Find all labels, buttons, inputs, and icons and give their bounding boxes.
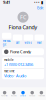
staticText: +1 (555) 012-3456 [4,62,33,67]
staticText: video [24,41,32,44]
staticText: Video · Audio [4,73,26,78]
button[interactable]: Keypad [28,91,37,97]
button[interactable]: Favorites [0,91,9,97]
staticText: ••• ▮ [34,0,43,5]
button[interactable]: FaceTime [2,68,44,79]
staticText: Contacts [20,95,26,97]
staticText: Favorites [1,95,8,97]
staticText: FC [20,14,26,21]
button[interactable]: message [2,33,11,46]
staticText: Fiona Candy [10,49,31,54]
button[interactable]: Contacts [18,91,28,97]
button[interactable]: video [24,35,33,44]
button[interactable]: mail [35,35,44,44]
button[interactable]: call [13,35,22,44]
staticText: FaceTime [4,69,15,73]
button[interactable]: Voicemail [37,91,46,97]
staticText: Edit [37,5,43,10]
staticText: mail [37,41,42,44]
staticText: message [3,39,11,46]
button[interactable]: Edit [37,5,43,10]
staticText: Recents [11,95,17,97]
staticText: call [16,41,20,44]
staticText: Fiona Candy [8,24,37,31]
staticText: mobile [4,58,14,62]
staticText: 9:41 [3,0,10,5]
staticText: Voicemail [38,95,44,97]
staticText: Keypad [29,95,35,97]
button[interactable]: Recents [9,91,18,97]
button[interactable]: mobile [2,57,44,68]
